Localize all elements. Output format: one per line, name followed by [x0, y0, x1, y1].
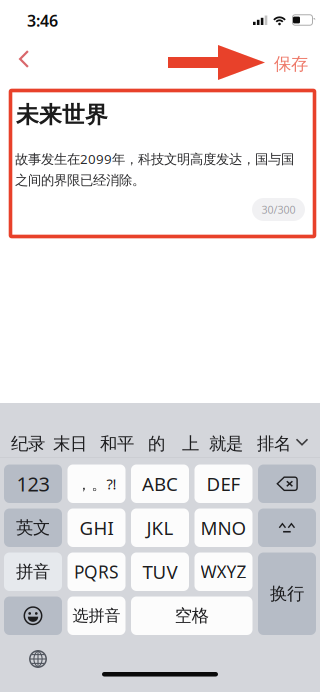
- staticText: 纪录: [11, 433, 45, 454]
- staticText: 空格: [175, 605, 209, 626]
- button[interactable]: TUV: [131, 552, 189, 591]
- button[interactable]: 换行: [258, 552, 316, 635]
- button[interactable]: 拼音: [4, 552, 62, 591]
- staticText: MNO: [200, 515, 246, 540]
- staticText: 英文: [16, 517, 50, 538]
- button[interactable]: 选拼音: [67, 596, 125, 635]
- staticText: PQRS: [74, 560, 119, 583]
- button[interactable]: PQRS: [67, 552, 125, 591]
- staticText: 故事发生在2099年，科技文明高度发达，国与国之间的界限已经消除。: [15, 150, 294, 189]
- staticText: 换行: [270, 583, 304, 604]
- button[interactable]: GHI: [67, 508, 125, 547]
- button[interactable]: WXYZ: [194, 552, 252, 591]
- staticText: JKL: [146, 515, 173, 540]
- button[interactable]: 保存: [269, 47, 313, 81]
- button[interactable]: [4, 596, 62, 635]
- button[interactable]: 末日: [49, 424, 91, 463]
- staticText: 30/300: [261, 202, 295, 217]
- button[interactable]: DEF: [194, 464, 252, 503]
- button[interactable]: 123: [4, 464, 62, 503]
- button[interactable]: 英文: [4, 508, 62, 547]
- staticText: 和平: [100, 433, 134, 454]
- staticText: 拼音: [16, 561, 50, 582]
- button[interactable]: JKL: [131, 508, 189, 547]
- button[interactable]: [258, 464, 316, 503]
- button[interactable]: 就是: [205, 424, 247, 463]
- button[interactable]: 空格: [131, 596, 252, 635]
- staticText: 排名: [257, 433, 291, 454]
- staticText: 的: [148, 433, 165, 454]
- button[interactable]: Collapse candidates: [289, 427, 315, 457]
- button[interactable]: ABC: [131, 464, 189, 503]
- staticText: 3:46: [27, 10, 58, 31]
- staticText: WXYZ: [200, 560, 246, 583]
- button[interactable]: MNO: [194, 508, 252, 547]
- button[interactable]: 纪录: [7, 424, 49, 463]
- button[interactable]: Back: [2, 37, 46, 81]
- staticText: DEF: [206, 471, 240, 496]
- button[interactable]: 排名: [253, 424, 295, 463]
- button[interactable]: 上: [178, 424, 203, 463]
- staticText: 未来世界: [16, 101, 108, 129]
- button[interactable]: 和平: [96, 424, 138, 463]
- staticText: 末日: [53, 433, 87, 454]
- button[interactable]: Switch keyboard: [18, 642, 58, 676]
- staticText: 就是: [209, 433, 243, 454]
- button[interactable]: [258, 508, 316, 547]
- button[interactable]: 的: [144, 424, 169, 463]
- staticText: 上: [182, 433, 199, 454]
- staticText: 保存: [274, 53, 308, 75]
- staticText: ，。?!: [76, 474, 116, 494]
- button[interactable]: ，。?!: [67, 464, 125, 503]
- staticText: TUV: [142, 559, 177, 584]
- staticText: 123: [16, 470, 49, 497]
- staticText: 选拼音: [72, 606, 120, 626]
- staticText: GHI: [79, 515, 113, 540]
- staticText: ABC: [142, 471, 178, 496]
